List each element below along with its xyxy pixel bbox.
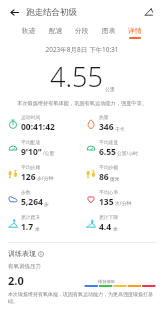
staticText: 米 <box>113 226 118 232</box>
staticText: 2023年8月8日 下午10:31 <box>0 45 164 54</box>
staticText: 图表 <box>102 26 116 35</box>
staticText: 维持体能 <box>98 279 115 284</box>
staticText: 步 <box>44 201 49 207</box>
staticText: 126 <box>21 171 36 183</box>
staticText: 平均心率 <box>99 189 119 195</box>
button[interactable]: 轨迹 <box>20 24 38 41</box>
staticText: 9'10" <box>21 146 42 158</box>
staticText: 2.0 <box>8 273 24 288</box>
staticText: 累计下降 <box>99 214 119 220</box>
staticText: 次/分钟 <box>115 200 132 207</box>
staticText: 平均步频 <box>21 164 41 170</box>
staticText: 5,264 <box>21 196 43 208</box>
button[interactable]: 分段 <box>73 24 91 41</box>
staticText: 6.55 <box>99 146 116 158</box>
staticText: 4.4 <box>99 221 112 233</box>
button[interactable]: 累计下降 <box>86 214 164 233</box>
button[interactable]: 平均配速 <box>8 139 82 158</box>
button[interactable]: 平均步幅 <box>86 164 164 183</box>
staticText: 本次锻炼维持有氧体能，巩固有氧运动能力，强度中等。 <box>10 100 154 107</box>
staticText: 公里 <box>105 86 115 92</box>
staticText: 00:41:42 <box>21 121 55 133</box>
button[interactable]: 配速 <box>47 24 65 41</box>
button[interactable]: 训练表现 <box>8 249 44 258</box>
button[interactable]: 步数 <box>8 189 82 208</box>
staticText: 1.7 <box>21 221 34 233</box>
staticText: 平均步幅 <box>99 164 119 170</box>
staticText: 轨迹 <box>22 26 36 35</box>
button[interactable]: 运动时间 <box>8 114 82 133</box>
button[interactable]: Back <box>4 2 24 22</box>
staticText: 训练表现 <box>8 249 36 258</box>
staticText: 公里/小时 <box>117 150 138 157</box>
staticText: /公里 <box>43 150 55 157</box>
button[interactable]: 图表 <box>100 24 118 41</box>
staticText: 步/分钟 <box>37 175 54 182</box>
button[interactable]: Share <box>140 3 158 21</box>
button[interactable]: 详情 <box>126 24 144 41</box>
staticText: 跑走结合初级 <box>26 7 77 18</box>
staticText: 4.55 <box>50 58 103 95</box>
staticText: 热量 <box>99 114 109 120</box>
staticText: 346 <box>99 121 114 133</box>
staticText: 本次锻炼维持有氧体能，巩固有氧运动能力，为更高强度锻炼打基础。 <box>8 291 156 305</box>
staticText: 累计爬升 <box>21 214 41 220</box>
staticText: 米 <box>35 226 40 232</box>
button[interactable]: 累计爬升 <box>8 214 82 233</box>
staticText: 平均配速 <box>21 139 41 145</box>
button[interactable]: 平均步频 <box>8 164 82 183</box>
staticText: 平均速度 <box>99 139 119 145</box>
staticText: 千卡 <box>115 126 125 132</box>
staticText: 配速 <box>49 26 63 35</box>
other: Info <box>38 251 44 257</box>
staticText: 厘米 <box>110 176 120 182</box>
staticText: 运动时间 <box>21 114 41 120</box>
staticText: 详情 <box>128 26 142 35</box>
staticText: 分段 <box>75 26 89 35</box>
button[interactable]: 平均速度 <box>86 139 164 158</box>
staticText: 有氧训练压力 <box>8 263 41 270</box>
staticText: 135 <box>99 196 114 208</box>
button[interactable]: 热量 <box>86 114 164 133</box>
staticText: 86 <box>99 171 109 183</box>
staticText: 步数 <box>21 189 31 195</box>
button[interactable]: 平均心率 <box>86 189 164 208</box>
